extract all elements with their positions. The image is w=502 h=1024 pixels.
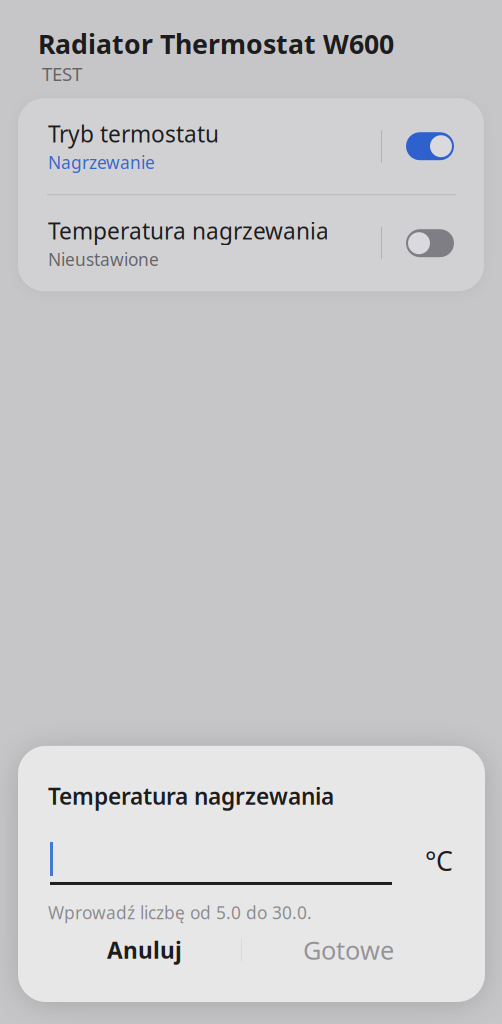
staticText: Nieustawione — [48, 248, 159, 271]
staticText: Wprowadź liczbę od 5.0 do 30.0. — [48, 901, 312, 924]
button[interactable]: Temperatura nagrzewania — [18, 195, 484, 291]
staticText: Tryb termostatu — [48, 119, 219, 149]
staticText: Anuluj — [107, 935, 182, 965]
staticText: Nagrzewanie — [48, 151, 155, 174]
button[interactable]: Tryb termostatu — [18, 98, 484, 194]
staticText: Radiator Thermostat W600 — [38, 26, 394, 61]
staticText: Gotowe — [303, 933, 394, 967]
button[interactable]: Anuluj — [18, 928, 241, 972]
staticText: Temperatura nagrzewania — [48, 781, 334, 811]
staticText: TEST — [42, 61, 82, 86]
staticText: °C — [425, 843, 453, 878]
button[interactable]: Gotowe — [242, 928, 485, 972]
staticText: Temperatura nagrzewania — [48, 216, 329, 246]
